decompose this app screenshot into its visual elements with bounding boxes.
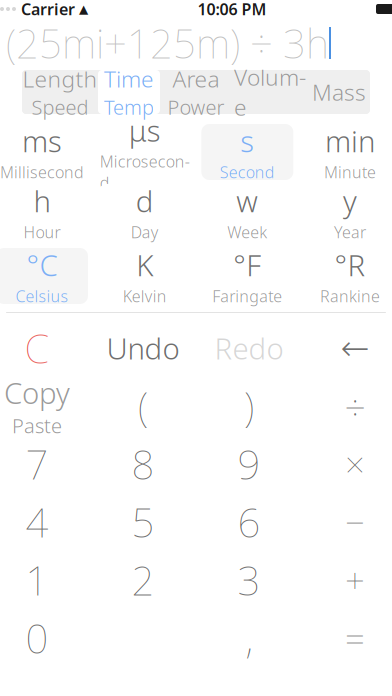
staticText: Kelvin — [123, 285, 167, 307]
button[interactable]: − — [306, 493, 392, 551]
button[interactable]: Area — [160, 70, 232, 114]
staticText: Power — [167, 94, 224, 120]
staticText: ▲ — [79, 2, 88, 16]
button[interactable]: Length — [22, 70, 98, 114]
button[interactable]: Mass — [308, 70, 370, 114]
button[interactable]: ms — [0, 124, 88, 180]
staticText: K — [136, 245, 153, 284]
staticText: + — [345, 557, 365, 603]
staticText: Second — [220, 161, 275, 183]
staticText: 10:06 PM — [197, 0, 266, 20]
staticText: ← — [340, 328, 369, 368]
button[interactable]: + — [306, 551, 392, 609]
staticText: Length — [22, 64, 97, 94]
button[interactable]: w — [201, 184, 293, 240]
button[interactable]: Volume — [232, 70, 308, 114]
button[interactable]: 2 — [94, 551, 192, 609]
button[interactable]: 8 — [94, 435, 192, 493]
button[interactable]: 7 — [0, 435, 86, 493]
staticText: Carrier — [21, 0, 75, 20]
staticText: °C — [26, 245, 57, 284]
staticText: Microsecond — [100, 151, 190, 193]
staticText: Rankine — [320, 285, 380, 307]
button[interactable]: μs — [99, 124, 191, 180]
button[interactable]: K — [99, 248, 191, 304]
staticText: Redo — [214, 328, 283, 367]
staticText: × — [345, 441, 365, 487]
staticText: Hour — [23, 221, 60, 243]
staticText: (25mi+125m) ÷ 3h — [6, 16, 329, 69]
button[interactable]: 3 — [200, 551, 298, 609]
staticText: 3 — [237, 553, 260, 606]
staticText: 7 — [25, 437, 48, 490]
staticText: Minute — [324, 161, 376, 183]
staticText: Year — [334, 221, 366, 243]
staticText: 6 — [237, 495, 260, 548]
button[interactable]: h — [0, 184, 88, 240]
button[interactable]: 0 — [0, 609, 86, 667]
button[interactable]: °F — [201, 248, 293, 304]
staticText: 9 — [237, 437, 260, 490]
staticText: y — [343, 181, 357, 220]
button[interactable]: Redo — [200, 319, 298, 377]
staticText: Temp — [104, 94, 154, 120]
staticText: Millisecond — [0, 161, 84, 183]
staticText: ms — [22, 121, 62, 160]
staticText: Mass — [312, 77, 366, 107]
staticText: 1 — [25, 553, 48, 606]
button[interactable]: min — [304, 124, 392, 180]
staticText: h — [33, 181, 50, 220]
button[interactable]: 9 — [200, 435, 298, 493]
button[interactable]: Undo — [94, 319, 192, 377]
button[interactable]: , — [200, 609, 298, 667]
button[interactable]: s — [201, 124, 293, 180]
staticText: °R — [334, 245, 365, 284]
staticText: w — [236, 181, 258, 220]
button[interactable]: ( — [94, 377, 192, 435]
staticText: ÷ — [344, 381, 365, 431]
button[interactable]: °R — [304, 248, 392, 304]
button[interactable]: = — [306, 609, 392, 667]
button[interactable]: × — [306, 435, 392, 493]
button[interactable]: C — [0, 319, 86, 377]
staticText: 8 — [131, 437, 154, 490]
button[interactable]: y — [304, 184, 392, 240]
staticText: 0 — [25, 611, 48, 664]
staticText: C — [24, 321, 49, 374]
staticText: 4 — [25, 495, 48, 548]
staticText: ) — [244, 379, 254, 432]
staticText: Day — [131, 221, 159, 243]
button[interactable]: 5 — [94, 493, 192, 551]
staticText: 5 — [131, 495, 154, 548]
button[interactable]: °C — [0, 248, 88, 304]
staticText: Speed — [31, 94, 88, 120]
button[interactable]: Time — [98, 70, 160, 114]
button[interactable]: 1 — [0, 551, 86, 609]
staticText: Paste — [12, 412, 62, 439]
button[interactable]: Copy — [0, 377, 86, 435]
staticText: s — [240, 121, 254, 160]
button[interactable]: d — [99, 184, 191, 240]
staticText: Time — [104, 64, 154, 94]
staticText: μs — [129, 111, 161, 150]
staticText: ( — [138, 379, 148, 432]
staticText: Faringate — [212, 285, 282, 307]
staticText: , — [245, 611, 252, 664]
staticText: d — [136, 181, 154, 220]
staticText: − — [345, 499, 365, 545]
staticText: 2 — [131, 553, 154, 606]
button[interactable]: 4 — [0, 493, 86, 551]
staticText: Area — [172, 64, 219, 94]
button[interactable]: ) — [200, 377, 298, 435]
staticText: Undo — [106, 328, 179, 367]
button[interactable]: ÷ — [306, 377, 392, 435]
staticText: °F — [233, 245, 261, 284]
button[interactable]: ← — [306, 319, 392, 377]
staticText: min — [325, 121, 375, 160]
staticText: Volume — [234, 62, 306, 122]
staticText: Copy — [4, 373, 70, 412]
staticText: Celsius — [15, 285, 68, 307]
button[interactable]: 6 — [200, 493, 298, 551]
